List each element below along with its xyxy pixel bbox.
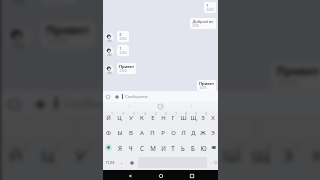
button[interactable]: 1: [117, 45, 129, 56]
button[interactable]: Привет: [117, 63, 136, 74]
button[interactable]: С: [136, 140, 147, 155]
button[interactable]: Ю: [198, 140, 208, 155]
button[interactable]: А: [136, 125, 147, 140]
button[interactable]: Й: [0, 139, 32, 173]
staticText: 2: [122, 112, 124, 116]
button[interactable]: Б: [188, 140, 198, 155]
button[interactable]: З: [198, 111, 208, 125]
button[interactable]: В: [125, 125, 136, 140]
button[interactable]: Р: [158, 173, 187, 180]
button[interactable]: Н: [158, 139, 187, 173]
button[interactable]: Ш: [178, 111, 188, 125]
button[interactable]: Р: [158, 125, 168, 140]
button[interactable]: Avatar: [105, 65, 114, 74]
button[interactable]: Ф: [0, 173, 32, 180]
staticText: 6: [179, 141, 184, 151]
button[interactable]: Back: [125, 171, 134, 180]
button[interactable]: Д: [188, 125, 198, 140]
button[interactable]: Ц: [32, 139, 63, 173]
button[interactable]: Привет: [271, 63, 320, 90]
button[interactable]: Н: [158, 111, 168, 125]
button[interactable]: Я: [114, 140, 125, 155]
button[interactable]: П: [127, 173, 158, 180]
staticText: О: [171, 129, 176, 137]
button[interactable]: Х: [302, 139, 320, 173]
staticText: 23:04: [119, 69, 127, 73]
button[interactable]: Ц: [114, 111, 125, 125]
button[interactable]: Attach: [114, 94, 120, 100]
button[interactable]: У: [125, 111, 136, 125]
button[interactable]: Х: [208, 111, 218, 125]
button[interactable]: Ч: [125, 140, 136, 155]
button[interactable]: Привет: [40, 21, 95, 48]
button[interactable]: ?123: [103, 155, 116, 170]
staticText: 23:03: [119, 51, 127, 55]
button[interactable]: Home: [156, 171, 165, 180]
button[interactable]: Recents: [187, 171, 196, 180]
staticText: Сообщение: [125, 94, 148, 99]
button[interactable]: Ш: [216, 139, 245, 173]
button[interactable]: Е: [127, 139, 158, 173]
button[interactable]: Ф: [103, 125, 114, 140]
button[interactable]: Й: [103, 111, 114, 125]
button[interactable]: О: [168, 125, 178, 140]
button[interactable]: Л: [216, 173, 245, 180]
button[interactable]: У: [63, 139, 95, 173]
staticText: З: [282, 146, 294, 166]
button[interactable]: Avatar: [105, 47, 114, 56]
button[interactable]: О: [187, 173, 216, 180]
button[interactable]: И: [158, 140, 168, 155]
button[interactable]: К: [136, 111, 147, 125]
button[interactable]: Г: [187, 139, 216, 173]
button[interactable]: З: [274, 139, 302, 173]
button[interactable]: Ь: [178, 140, 188, 155]
button[interactable]: Е: [147, 111, 158, 125]
button[interactable]: Щ: [188, 111, 198, 125]
staticText: ,: [121, 159, 123, 166]
button[interactable]: К: [95, 139, 127, 173]
button[interactable]: Attach: [32, 97, 49, 112]
staticText: А: [140, 129, 144, 137]
button[interactable]: Т: [168, 140, 178, 155]
button[interactable]: Ж: [198, 125, 208, 140]
button[interactable]: Добрый ве: [190, 18, 216, 29]
button[interactable]: П: [147, 125, 158, 140]
button[interactable]: Backspace: [208, 140, 218, 155]
button[interactable]: Voice input: [127, 155, 137, 170]
button[interactable]: М: [147, 140, 158, 155]
button[interactable]: Shift: [103, 140, 114, 155]
button[interactable]: Привет: [197, 80, 216, 91]
staticText: Л: [181, 129, 186, 137]
staticText: 23:02: [119, 37, 127, 41]
button[interactable]: Avatar: [6, 26, 32, 48]
button[interactable]: А: [95, 173, 127, 180]
staticText: Е: [138, 146, 150, 166]
button[interactable]: ,: [116, 155, 127, 170]
button[interactable]: Э: [208, 125, 218, 140]
button[interactable]: Щ: [245, 139, 274, 173]
button[interactable]: 2: [117, 31, 129, 42]
staticText: 0: [205, 112, 207, 116]
button[interactable]: Avatar: [105, 33, 114, 42]
staticText: 9: [195, 112, 197, 116]
button[interactable]: Emoji: [105, 94, 111, 100]
button[interactable]: Enter: [213, 155, 218, 170]
button[interactable]: 1: [204, 2, 216, 13]
button[interactable]: .: [208, 155, 213, 170]
button[interactable]: Г: [168, 111, 178, 125]
staticText: К: [140, 114, 144, 122]
staticText: Привет: [276, 65, 320, 78]
button[interactable]: Ы: [114, 125, 125, 140]
button[interactable]: Avatar: [6, 0, 32, 4]
staticText: 4: [144, 112, 146, 116]
button[interactable]: Л: [178, 125, 188, 140]
staticText: Г: [196, 146, 207, 166]
